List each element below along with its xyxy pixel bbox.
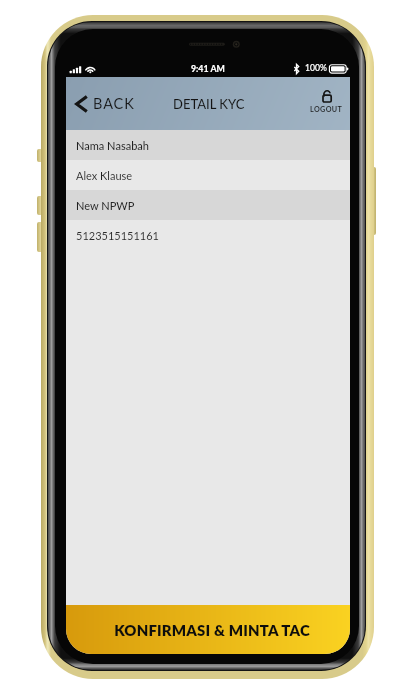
button[interactable]: BACK (66, 85, 145, 122)
button[interactable]: New NPWP (66, 190, 350, 220)
button[interactable]: 5123515151161 (66, 220, 350, 250)
staticText: 5123515151161 (76, 229, 159, 242)
button[interactable]: Nama Nasabah (66, 130, 350, 160)
staticText: BACK (93, 95, 135, 112)
staticText: Alex Klause (76, 169, 133, 182)
button[interactable]: Alex Klause (66, 160, 350, 190)
staticText: 9:41 AM (191, 63, 225, 74)
staticText: LOGOUT (310, 105, 343, 114)
staticText: Nama Nasabah (76, 139, 149, 152)
staticText: New NPWP (76, 199, 135, 212)
staticText: DETAIL KYC (173, 96, 245, 112)
staticText: KONFIRMASI & MINTA TAC (114, 621, 310, 639)
button[interactable]: Logout (300, 84, 350, 124)
button[interactable]: KONFIRMASI & MINTA TAC (66, 605, 350, 654)
staticText: 100% (305, 63, 327, 73)
